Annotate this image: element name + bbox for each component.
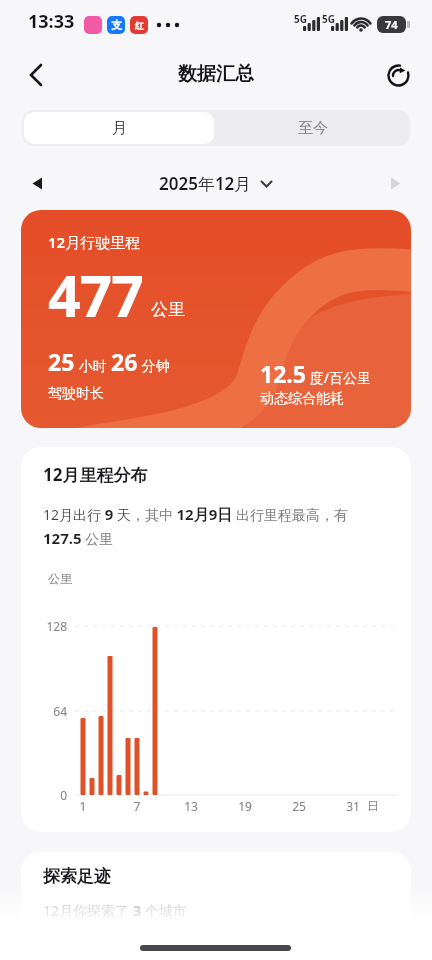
staticText: 25 bbox=[284, 798, 314, 814]
staticText: 477 bbox=[48, 256, 143, 334]
staticText: 至今 bbox=[298, 119, 328, 138]
staticText: 12月你探索了 3 个城市 bbox=[43, 900, 187, 920]
staticText: 小时 bbox=[75, 356, 111, 375]
staticText: 探索足迹 bbox=[43, 866, 111, 887]
staticText: 13 bbox=[176, 798, 206, 814]
staticText: 64 bbox=[41, 703, 67, 719]
staticText: 5G bbox=[294, 12, 307, 26]
staticText: 分钟 bbox=[138, 356, 170, 375]
staticText: 数据汇总 bbox=[0, 62, 432, 86]
staticText: 1 bbox=[68, 798, 98, 814]
button[interactable] bbox=[16, 56, 56, 94]
staticText: 支 bbox=[111, 18, 122, 32]
button[interactable]: 2025年12月 bbox=[159, 172, 273, 195]
staticText: 74 bbox=[385, 17, 398, 32]
staticText: 5G bbox=[322, 12, 335, 26]
staticText: 公里 bbox=[48, 571, 72, 586]
button[interactable]: 月 bbox=[24, 112, 214, 144]
button[interactable]: 至今 bbox=[216, 110, 410, 146]
staticText: 128 bbox=[41, 618, 67, 634]
staticText: 红 bbox=[135, 20, 144, 31]
staticText: 31 bbox=[338, 798, 368, 814]
staticText: 12月行驶里程 bbox=[48, 232, 141, 252]
button[interactable]: 12月行驶里程 bbox=[21, 210, 411, 428]
button[interactable] bbox=[22, 168, 52, 198]
staticText: 度/百公里 bbox=[306, 368, 372, 387]
staticText: 月 bbox=[112, 119, 127, 138]
staticText: 日 bbox=[367, 798, 379, 813]
staticText: 驾驶时长 bbox=[48, 385, 104, 403]
staticText: 7 bbox=[122, 798, 152, 814]
staticText: 12月出行 9 天，其中 12月9日 出行里程最高，有 127.5 公里 bbox=[43, 504, 375, 548]
staticText: 0 bbox=[41, 787, 67, 803]
button[interactable] bbox=[378, 56, 418, 94]
staticText: 12月里程分布 bbox=[43, 463, 148, 486]
staticText: 12.5 bbox=[260, 358, 306, 389]
staticText: 26 bbox=[111, 346, 138, 377]
staticText: 2025年12月 bbox=[159, 172, 252, 195]
staticText: 公里 bbox=[151, 299, 185, 320]
staticText: 13:33 bbox=[28, 9, 75, 34]
staticText: 25 bbox=[48, 346, 75, 377]
staticText: 动态综合能耗 bbox=[260, 390, 344, 408]
staticText: 19 bbox=[230, 798, 260, 814]
button[interactable] bbox=[380, 168, 410, 198]
